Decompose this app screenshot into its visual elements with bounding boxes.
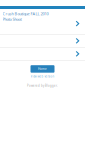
button[interactable]: Home [30, 65, 54, 73]
staticText: Home [38, 67, 47, 71]
staticText: View web version [30, 75, 54, 78]
button[interactable]: Open post [0, 35, 85, 47]
staticText: Crush Boutique FALL 2010 Photo Shoot [2, 11, 48, 22]
staticText: Powered by Blogger. [27, 84, 58, 87]
button[interactable]: Open post [0, 48, 85, 60]
button[interactable]: Crush Boutique FALL 2010 Photo Shoot [0, 9, 85, 34]
button[interactable]: View web version [30, 75, 54, 78]
